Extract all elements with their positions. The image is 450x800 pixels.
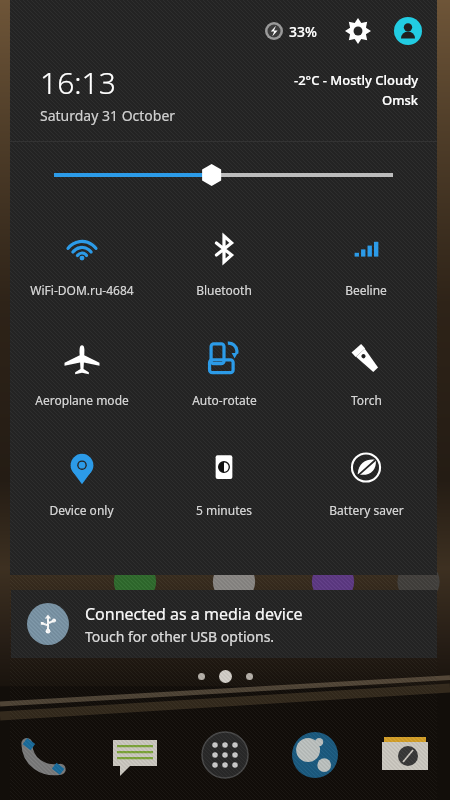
- staticText: -2°C - Mostly Cloudy: [294, 71, 419, 89]
- button[interactable]: Auto-rotate: [153, 318, 295, 428]
- staticText: Connected as a media device: [85, 603, 303, 625]
- button[interactable]: 16:13: [40, 62, 294, 125]
- button[interactable]: Phone: [14, 724, 76, 786]
- button[interactable]: Messaging: [104, 724, 166, 786]
- staticText: Battery saver: [329, 502, 404, 518]
- button[interactable]: Brightness: [10, 142, 437, 208]
- button[interactable]: Location: [10, 428, 153, 538]
- button[interactable]: Settings: [343, 16, 373, 46]
- staticText: Omsk: [382, 91, 419, 109]
- button[interactable]: Screen timeout: [153, 428, 295, 538]
- staticText: Touch for other USB options.: [85, 627, 275, 646]
- button[interactable]: Connected as a media device: [11, 590, 437, 658]
- button[interactable]: Battery saver: [295, 428, 437, 538]
- staticText: 16:13: [40, 62, 116, 103]
- staticText: Device only: [49, 502, 114, 518]
- staticText: Beeline: [345, 282, 387, 298]
- button[interactable]: Apps: [194, 724, 256, 786]
- button[interactable]: Aeroplane mode: [10, 318, 153, 428]
- button[interactable]: Wi-Fi: [10, 208, 153, 318]
- button[interactable]: Torch: [295, 318, 437, 428]
- staticText: WiFi-DOM.ru-4684: [30, 282, 134, 298]
- button[interactable]: Bluetooth: [153, 208, 295, 318]
- staticText: Bluetooth: [196, 282, 252, 298]
- staticText: 5 minutes: [196, 502, 252, 518]
- button[interactable]: Camera: [374, 724, 436, 786]
- staticText: Auto-rotate: [192, 392, 257, 408]
- staticText: Aeroplane mode: [35, 392, 129, 408]
- button[interactable]: Mobile network: [295, 208, 437, 318]
- staticText: Saturday 31 October: [40, 106, 176, 125]
- button[interactable]: User profile: [393, 16, 423, 46]
- staticText: 33%: [289, 22, 317, 41]
- button[interactable]: Browser: [284, 724, 346, 786]
- staticText: Torch: [351, 392, 382, 408]
- button[interactable]: -2°C - Mostly Cloudy: [294, 62, 419, 109]
